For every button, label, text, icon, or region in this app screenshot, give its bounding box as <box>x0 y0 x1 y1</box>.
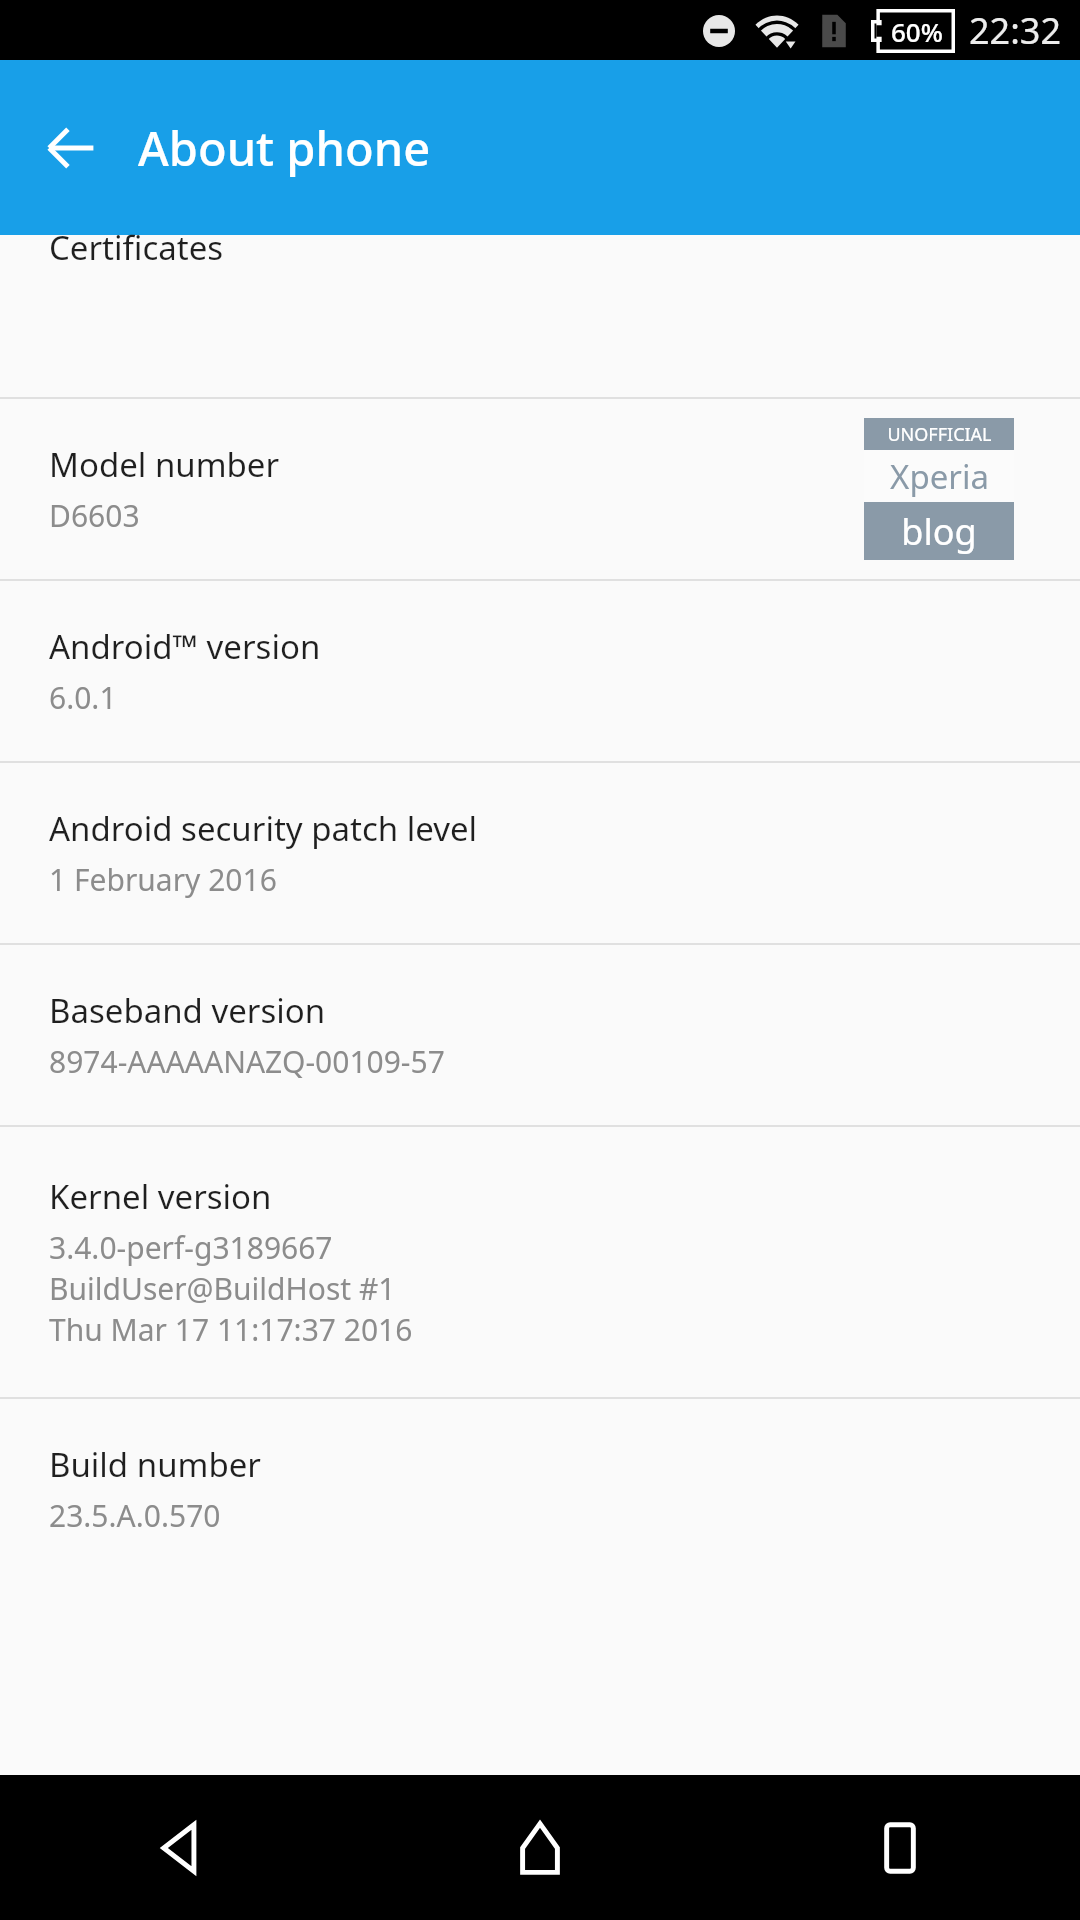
button[interactable]: Back <box>30 108 110 188</box>
button[interactable]: Certificates <box>0 235 1080 397</box>
staticText: Thu Mar 17 11:17:37 2016 <box>49 1309 413 1350</box>
button[interactable]: Recent apps <box>840 1788 960 1908</box>
staticText: 1 February 2016 <box>49 859 277 900</box>
staticText: Model number <box>49 442 280 487</box>
staticText: BuildUser@BuildHost #1 <box>49 1268 396 1309</box>
staticText: Xperia <box>890 454 989 499</box>
staticText: 23.5.A.0.570 <box>49 1495 221 1536</box>
staticText: 60% <box>891 14 943 49</box>
button[interactable]: Kernel version <box>0 1127 1080 1397</box>
staticText: Android security patch level <box>49 806 478 851</box>
button[interactable]: Back <box>120 1788 240 1908</box>
staticText: Build number <box>49 1442 261 1487</box>
staticText: Android™ version <box>49 624 321 669</box>
staticText: blog <box>901 507 977 556</box>
button[interactable]: Model number <box>0 399 1080 579</box>
staticText: UNOFFICIAL <box>887 422 992 447</box>
staticText: About phone <box>138 116 431 180</box>
staticText: Certificates <box>49 225 224 270</box>
staticText: Baseband version <box>49 988 326 1033</box>
button[interactable]: Build number <box>0 1399 1080 1579</box>
staticText: 3.4.0-perf-g3189667 <box>49 1227 333 1268</box>
staticText: Kernel version <box>49 1174 272 1219</box>
button[interactable]: Android security patch level <box>0 763 1080 943</box>
button[interactable]: Home <box>480 1788 600 1908</box>
staticText: 8974-AAAAANAZQ-00109-57 <box>49 1041 445 1082</box>
staticText: 6.0.1 <box>49 677 117 718</box>
staticText: D6603 <box>49 495 140 536</box>
button[interactable]: Android™ version <box>0 581 1080 761</box>
button[interactable]: Baseband version <box>0 945 1080 1125</box>
staticText: 22:32 <box>969 6 1062 55</box>
